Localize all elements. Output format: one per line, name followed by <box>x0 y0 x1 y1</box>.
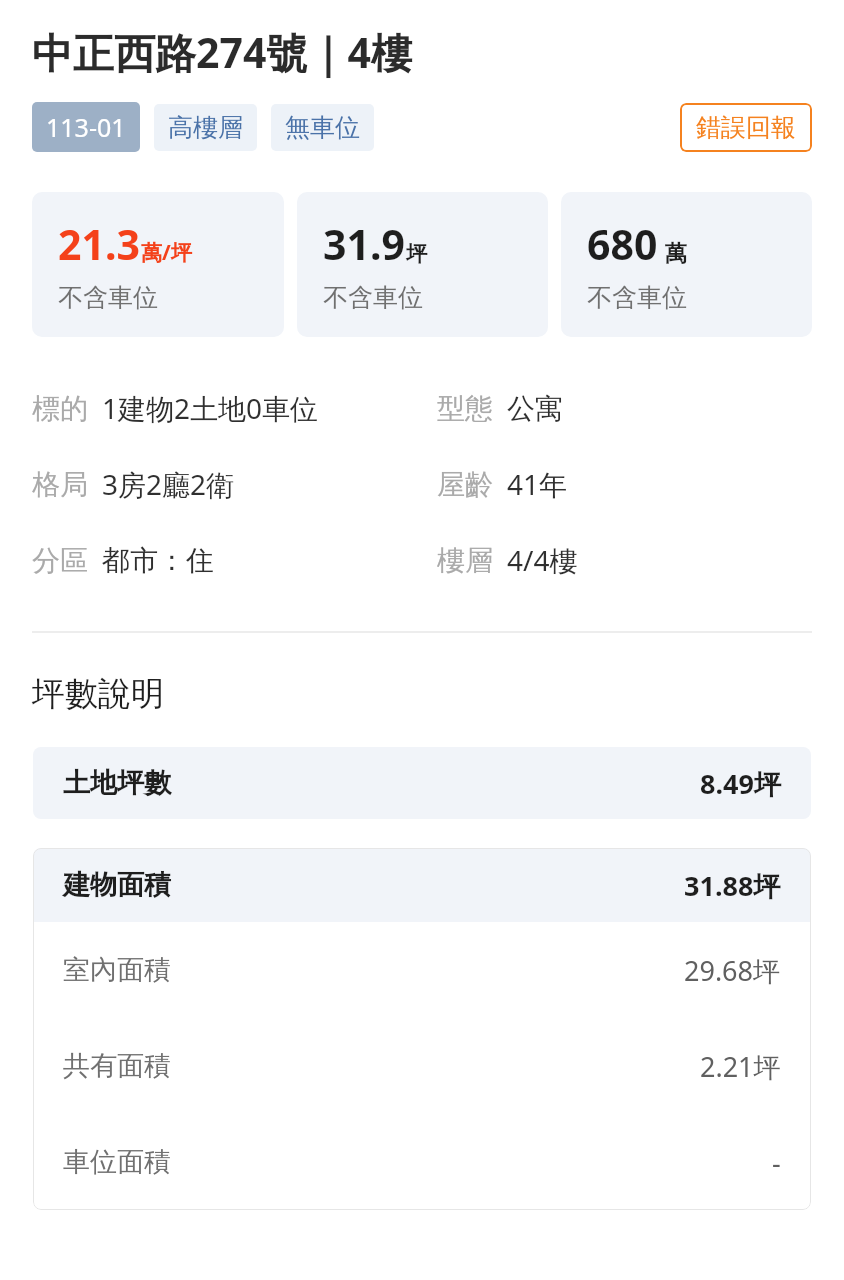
staticText: 土地坪數 <box>63 766 171 800</box>
staticText: 車位面積 <box>63 1145 171 1179</box>
button[interactable]: 建物面積 <box>33 848 811 922</box>
button[interactable]: 21.3 <box>32 192 284 337</box>
staticText: 680 <box>587 216 658 272</box>
staticText: 室內面積 <box>63 953 171 987</box>
staticText: - <box>772 1144 781 1181</box>
button[interactable]: 車位面積 <box>33 1114 811 1210</box>
staticText: 不含車位 <box>587 282 687 313</box>
staticText: 中正西路274號｜4樓 <box>32 24 412 80</box>
staticText: 高樓層 <box>168 112 243 143</box>
staticText: 41年 <box>507 465 568 503</box>
button[interactable]: 高樓層 <box>154 104 257 151</box>
staticText: 樓層 <box>437 543 493 578</box>
staticText: 萬 <box>659 237 687 267</box>
staticText: 3房2廳2衛 <box>102 465 235 503</box>
staticText: 型態 <box>437 391 493 426</box>
staticText: 共有面積 <box>63 1049 171 1083</box>
button[interactable]: 土地坪數 <box>33 747 811 819</box>
staticText: 4/4樓 <box>507 541 578 579</box>
staticText: 8.49坪 <box>700 765 781 802</box>
button[interactable]: 無車位 <box>271 104 374 151</box>
button[interactable]: 680 <box>561 192 812 337</box>
staticText: 不含車位 <box>323 282 423 313</box>
button[interactable]: 錯誤回報 <box>680 103 812 152</box>
staticText: 31.9 <box>323 216 405 272</box>
staticText: 無車位 <box>285 112 360 143</box>
staticText: 113-01 <box>46 110 126 144</box>
staticText: 錯誤回報 <box>696 112 796 143</box>
staticText: 不含車位 <box>58 282 158 313</box>
staticText: 格局 <box>32 467 88 502</box>
button[interactable]: 共有面積 <box>33 1018 811 1114</box>
staticText: 建物面積 <box>63 868 171 902</box>
button[interactable]: 室內面積 <box>33 922 811 1018</box>
button[interactable]: 113-01 <box>32 102 140 152</box>
staticText: 坪數說明 <box>32 673 164 715</box>
staticText: 21.3 <box>58 216 140 272</box>
staticText: 2.21坪 <box>700 1048 781 1085</box>
staticText: 分區 <box>32 543 88 578</box>
staticText: 萬/坪 <box>141 238 192 267</box>
staticText: 坪 <box>406 241 427 267</box>
staticText: 31.88坪 <box>684 867 781 904</box>
staticText: 屋齡 <box>437 467 493 502</box>
staticText: 1建物2土地0車位 <box>102 389 319 427</box>
staticText: 29.68坪 <box>684 952 781 989</box>
staticText: 都市：住 <box>102 543 214 578</box>
button[interactable]: 31.9 <box>297 192 548 337</box>
staticText: 標的 <box>32 391 88 426</box>
staticText: 公寓 <box>507 391 563 426</box>
